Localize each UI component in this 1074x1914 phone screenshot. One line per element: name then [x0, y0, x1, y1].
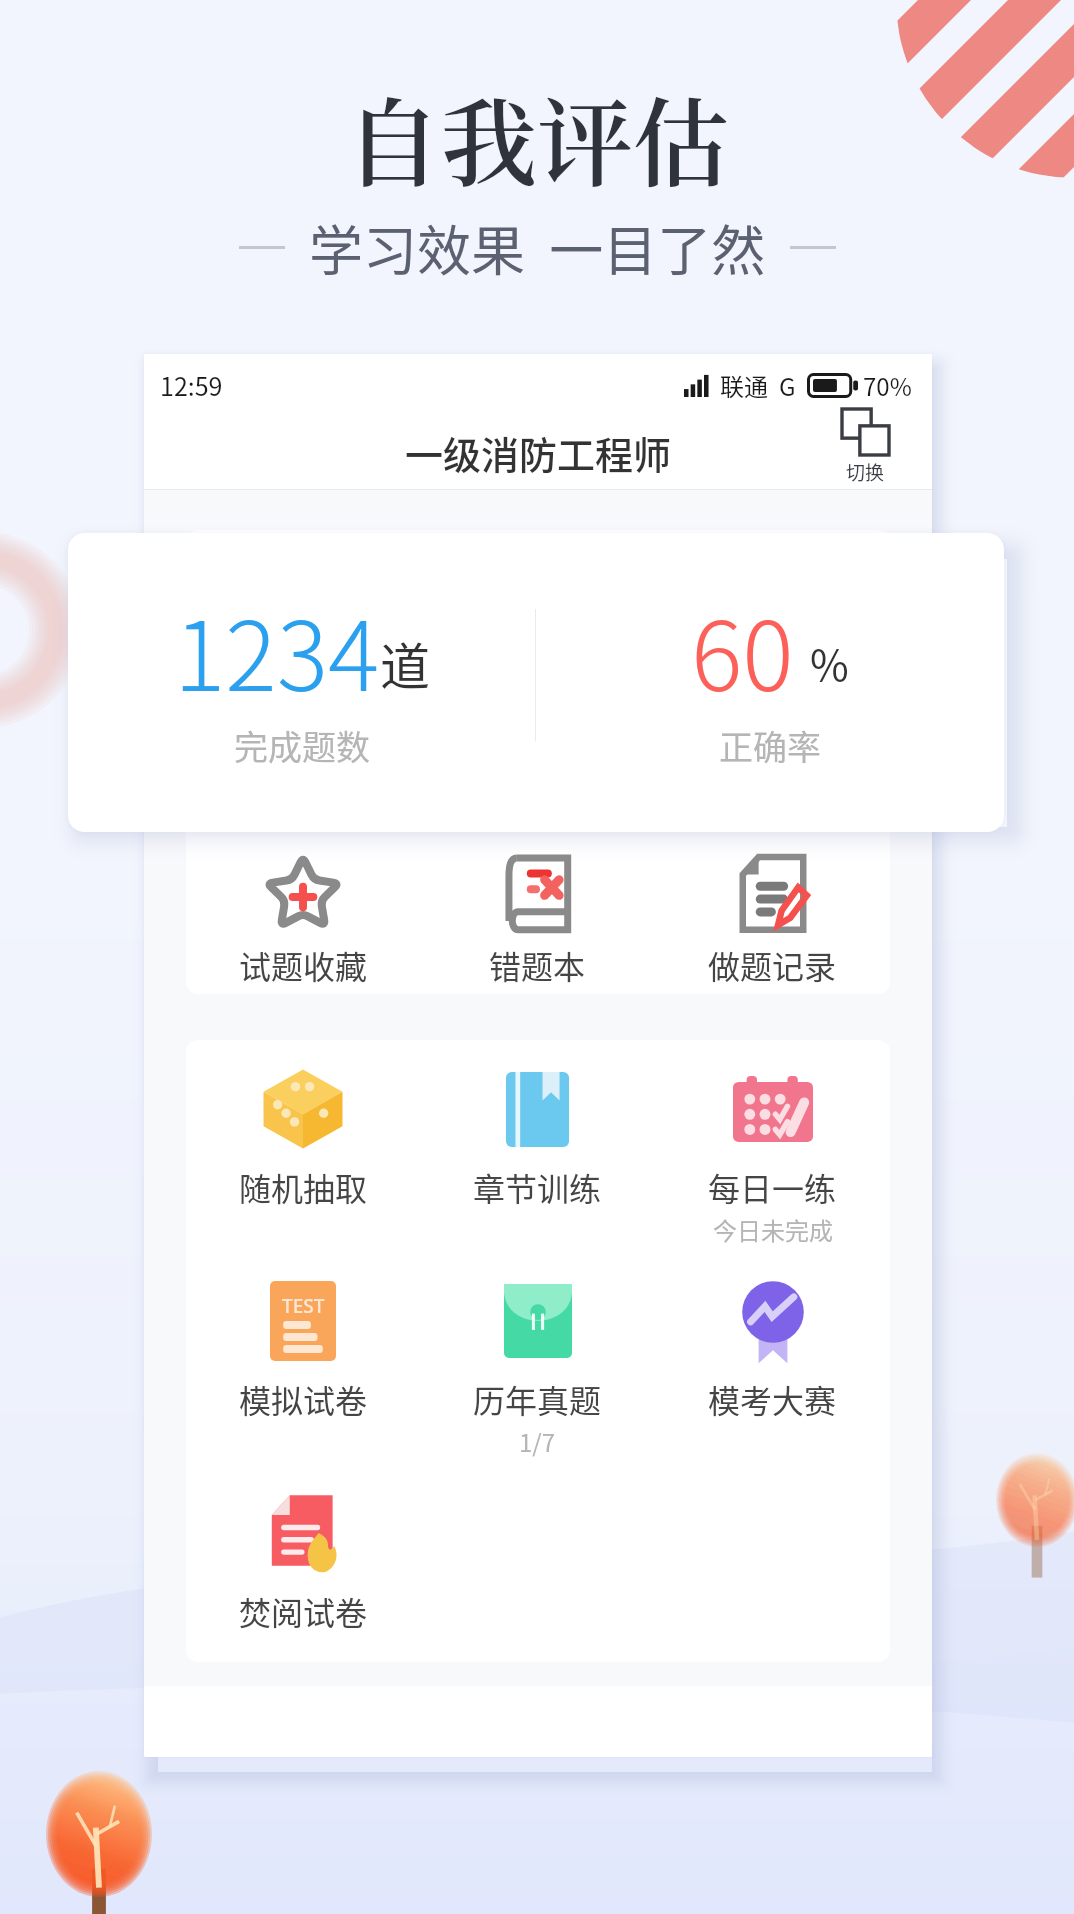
staticText: 历年真题 — [473, 1376, 602, 1422]
button[interactable]: 章节训练 — [420, 1066, 655, 1210]
staticText: 焚阅试卷 — [239, 1588, 368, 1634]
staticText: 正确率 — [719, 721, 821, 770]
staticText: 今日未完成 — [713, 1212, 833, 1247]
staticText: 60 — [691, 580, 794, 719]
staticText: 联通 — [720, 368, 768, 403]
staticText: 道 — [380, 627, 430, 699]
button[interactable]: 随机抽取 — [186, 1066, 420, 1210]
button[interactable]: 每日一练 — [655, 1066, 890, 1247]
staticText: 模考大赛 — [708, 1376, 837, 1422]
button[interactable]: 历年真题 — [420, 1278, 655, 1459]
button[interactable]: 模考大赛 — [655, 1278, 890, 1422]
staticText: 章节训练 — [473, 1164, 602, 1210]
staticText: % — [810, 632, 849, 693]
staticText: TEST — [282, 1293, 325, 1319]
staticText: 70% — [863, 368, 912, 403]
button[interactable]: 焚阅试卷 — [186, 1490, 420, 1634]
staticText: 1234 — [174, 580, 380, 719]
button[interactable]: 做题记录 — [655, 852, 890, 988]
staticText: 自我评估 — [0, 68, 1074, 206]
staticText: 一级消防工程师 — [405, 425, 672, 480]
button[interactable]: 试题收藏 — [186, 852, 420, 988]
button[interactable]: 错题本 — [420, 852, 655, 988]
staticText: 完成题数 — [234, 721, 370, 770]
staticText: 随机抽取 — [239, 1164, 368, 1210]
staticText: 错题本 — [489, 942, 586, 988]
staticText: 1/7 — [519, 1424, 556, 1459]
button[interactable]: 切换 — [842, 409, 889, 482]
staticText: 做题记录 — [708, 942, 837, 988]
staticText: 每日一练 — [708, 1164, 837, 1210]
button[interactable]: TEST — [186, 1278, 420, 1422]
staticText: 学习效果 一目了然 — [309, 208, 766, 286]
staticText: 12:59 — [160, 367, 223, 403]
staticText: 试题收藏 — [239, 942, 368, 988]
staticText: 模拟试卷 — [239, 1376, 368, 1422]
staticText: G — [779, 368, 796, 403]
staticText: 切换 — [846, 458, 885, 482]
